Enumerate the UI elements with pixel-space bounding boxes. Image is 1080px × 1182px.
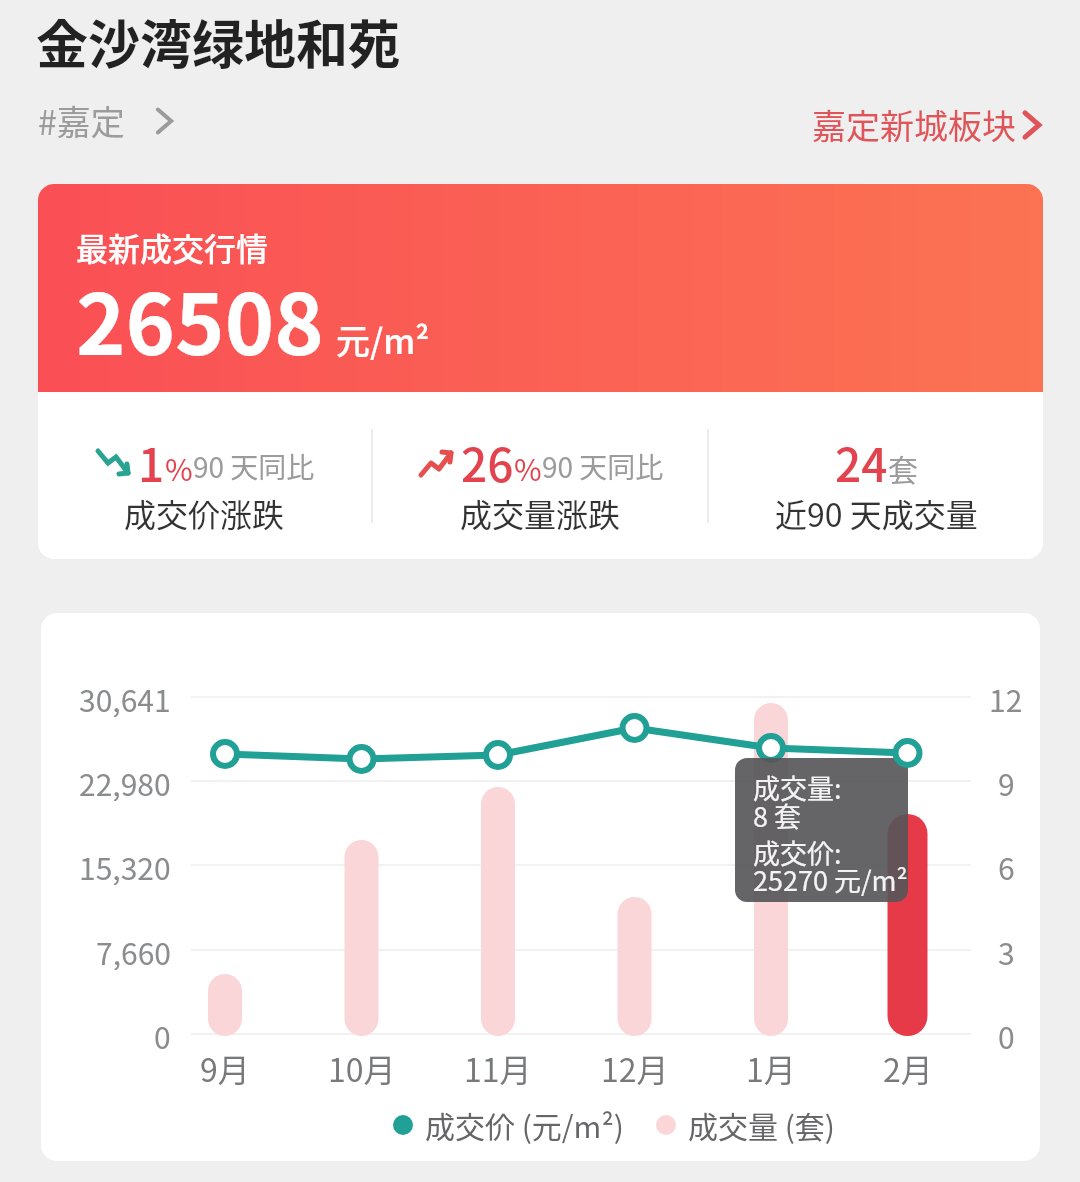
staticText: 1 [138,429,165,496]
staticText: % [165,446,193,489]
button[interactable]: 26 [373,392,707,559]
staticText: 成交价: [753,833,842,872]
staticText: 12月 [601,1045,669,1085]
button[interactable]: 24 [709,392,1043,559]
staticText: 近90 天成交量 [775,490,978,536]
staticText: 11月 [464,1045,532,1085]
staticText: 3 [998,930,1015,970]
staticText: 1月 [746,1045,796,1085]
staticText: 元/m² [336,315,430,364]
staticText: 0 [154,1014,171,1054]
staticText: 0 [998,1014,1015,1054]
button[interactable]: 1 [38,392,371,559]
staticText: 成交价涨跌 [124,490,285,536]
button[interactable]: 嘉定新城板块 [812,100,1042,149]
staticText: 24 [835,429,888,496]
staticText: 90 天同比 [193,446,315,487]
staticText: % [514,446,542,489]
staticText: 26 [461,429,514,496]
staticText: 25270 元/m² [753,860,908,899]
staticText: #嘉定 [38,96,125,145]
staticText: 成交量涨跌 [460,490,621,536]
staticText: 9 [998,761,1015,801]
staticText: 嘉定新城板块 [812,100,1016,149]
staticText: 12 [989,677,1023,717]
button[interactable]: #嘉定 [38,96,174,145]
staticText: 22,980 [79,761,171,801]
staticText: 2月 [883,1045,933,1085]
staticText: 10月 [328,1045,396,1085]
staticText: 7,660 [96,930,171,970]
staticText: 26508 [76,258,324,380]
staticText: 90 天同比 [542,446,664,487]
staticText: 套 [888,446,918,489]
staticText: 9月 [200,1045,250,1085]
staticText: 6 [998,845,1015,885]
button[interactable]: 最新成交行情 [38,184,1043,392]
staticText: 8 套 [753,796,802,835]
staticText: 成交量: [753,768,842,807]
staticText: 最新成交行情 [76,224,269,270]
staticText: 成交量 (套) [688,1103,835,1146]
staticText: 15,320 [79,845,171,885]
staticText: 成交价 (元/m²) [425,1103,624,1146]
staticText: 金沙湾绿地和苑 [36,4,401,79]
staticText: 30,641 [79,677,171,717]
